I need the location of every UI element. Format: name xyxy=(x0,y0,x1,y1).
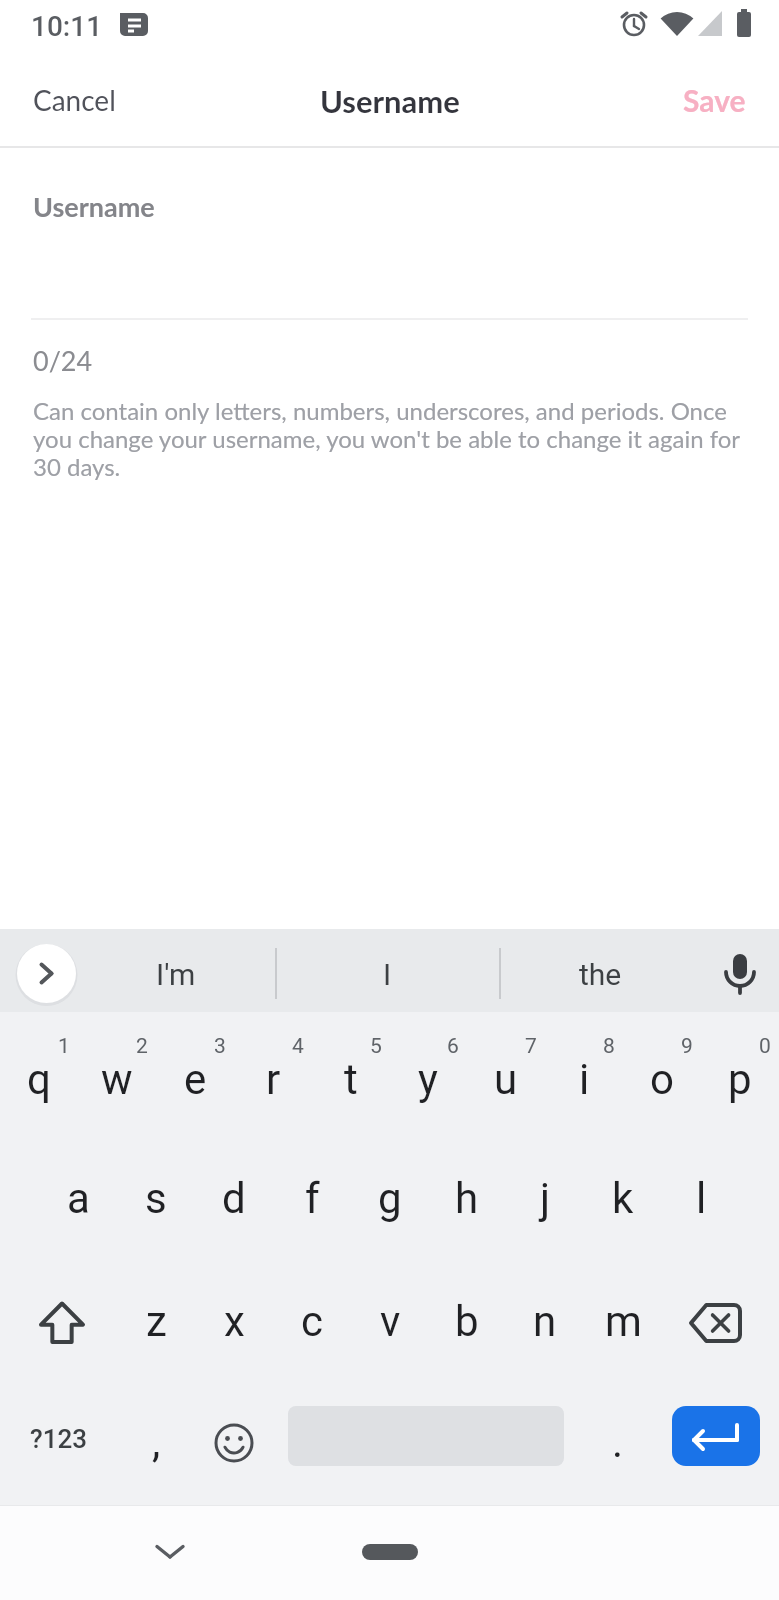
staticText: Cancel xyxy=(33,83,116,117)
button[interactable]: d xyxy=(195,1135,273,1258)
button[interactable]: m xyxy=(584,1258,662,1381)
staticText: i xyxy=(579,1055,590,1104)
button[interactable] xyxy=(0,1258,117,1381)
button[interactable]: n xyxy=(506,1258,584,1381)
staticText: y xyxy=(418,1055,438,1104)
staticText: q xyxy=(27,1055,51,1104)
button[interactable] xyxy=(672,1406,760,1466)
staticText: 0/24 xyxy=(33,344,93,374)
staticText: h xyxy=(455,1174,479,1223)
button[interactable]: , xyxy=(117,1381,195,1504)
button[interactable]: f xyxy=(273,1135,351,1258)
staticText: e xyxy=(184,1055,207,1104)
button[interactable]: I xyxy=(307,944,467,1004)
staticText: n xyxy=(533,1297,557,1346)
staticText: d xyxy=(222,1174,246,1223)
button[interactable]: o xyxy=(623,1012,701,1135)
staticText: 1 xyxy=(58,1034,70,1059)
staticText: 2 xyxy=(136,1034,148,1059)
button[interactable] xyxy=(17,944,76,1003)
button[interactable] xyxy=(362,1544,418,1560)
staticText: w xyxy=(101,1055,133,1104)
button[interactable]: ?123 xyxy=(0,1377,117,1500)
staticText: o xyxy=(650,1055,674,1104)
staticText: Username xyxy=(33,190,155,222)
button[interactable]: r xyxy=(234,1012,312,1135)
button[interactable]: p xyxy=(701,1012,779,1135)
button[interactable]: I'm xyxy=(96,944,256,1004)
button[interactable] xyxy=(702,934,778,1010)
staticText: s xyxy=(145,1174,167,1223)
button[interactable]: . xyxy=(579,1381,657,1504)
staticText: f xyxy=(305,1174,320,1223)
button[interactable]: z xyxy=(117,1258,195,1381)
button[interactable] xyxy=(146,1528,194,1576)
button[interactable]: s xyxy=(117,1135,195,1258)
button[interactable]: g xyxy=(351,1135,429,1258)
button[interactable]: u xyxy=(467,1012,545,1135)
button[interactable]: Cancel xyxy=(33,70,153,130)
staticText: Username xyxy=(320,82,460,119)
staticText: I'm xyxy=(156,957,196,992)
staticText: 0 xyxy=(759,1034,771,1059)
button[interactable] xyxy=(662,1258,779,1381)
button[interactable]: w xyxy=(78,1012,156,1135)
staticText: , xyxy=(152,1418,161,1467)
staticText: r xyxy=(266,1055,281,1104)
staticText: 8 xyxy=(603,1034,615,1059)
staticText: 9 xyxy=(681,1034,693,1059)
staticText: Save xyxy=(683,82,746,118)
button[interactable]: e xyxy=(156,1012,234,1135)
staticText: t xyxy=(344,1055,358,1104)
staticText: m xyxy=(605,1297,642,1346)
staticText: j xyxy=(540,1174,551,1223)
button[interactable]: h xyxy=(428,1135,506,1258)
button[interactable]: c xyxy=(273,1258,351,1381)
button[interactable]: l xyxy=(662,1135,740,1258)
button[interactable]: v xyxy=(351,1258,429,1381)
staticText: p xyxy=(728,1055,752,1104)
button[interactable]: the xyxy=(520,944,680,1004)
staticText: 3 xyxy=(214,1034,226,1059)
button[interactable]: q xyxy=(0,1012,78,1135)
staticText: 4 xyxy=(292,1034,304,1059)
staticText: a xyxy=(67,1174,90,1223)
staticText: v xyxy=(380,1297,401,1346)
staticText: the xyxy=(579,957,622,992)
staticText: u xyxy=(494,1055,518,1104)
staticText: I xyxy=(383,957,392,992)
staticText: x xyxy=(224,1297,245,1346)
staticText: b xyxy=(455,1297,479,1346)
staticText: k xyxy=(612,1174,634,1223)
button[interactable] xyxy=(195,1381,273,1504)
button[interactable]: j xyxy=(506,1135,584,1258)
button[interactable]: y xyxy=(389,1012,467,1135)
staticText: 6 xyxy=(447,1034,459,1059)
staticText: g xyxy=(378,1174,402,1223)
staticText: 7 xyxy=(525,1034,537,1059)
staticText: z xyxy=(146,1297,167,1346)
button[interactable]: t xyxy=(312,1012,390,1135)
staticText: c xyxy=(301,1297,323,1346)
staticText: Can contain only letters, numbers, under… xyxy=(33,396,741,481)
staticText: l xyxy=(696,1174,707,1223)
staticText: 10:11 xyxy=(31,10,103,43)
staticText: . xyxy=(612,1418,624,1467)
button[interactable]: b xyxy=(428,1258,506,1381)
staticText: ?123 xyxy=(30,1424,87,1454)
button[interactable]: a xyxy=(39,1135,117,1258)
button[interactable]: k xyxy=(584,1135,662,1258)
button[interactable]: i xyxy=(545,1012,623,1135)
button[interactable]: x xyxy=(195,1258,273,1381)
staticText: 5 xyxy=(370,1034,382,1059)
button[interactable]: Save xyxy=(646,70,746,130)
